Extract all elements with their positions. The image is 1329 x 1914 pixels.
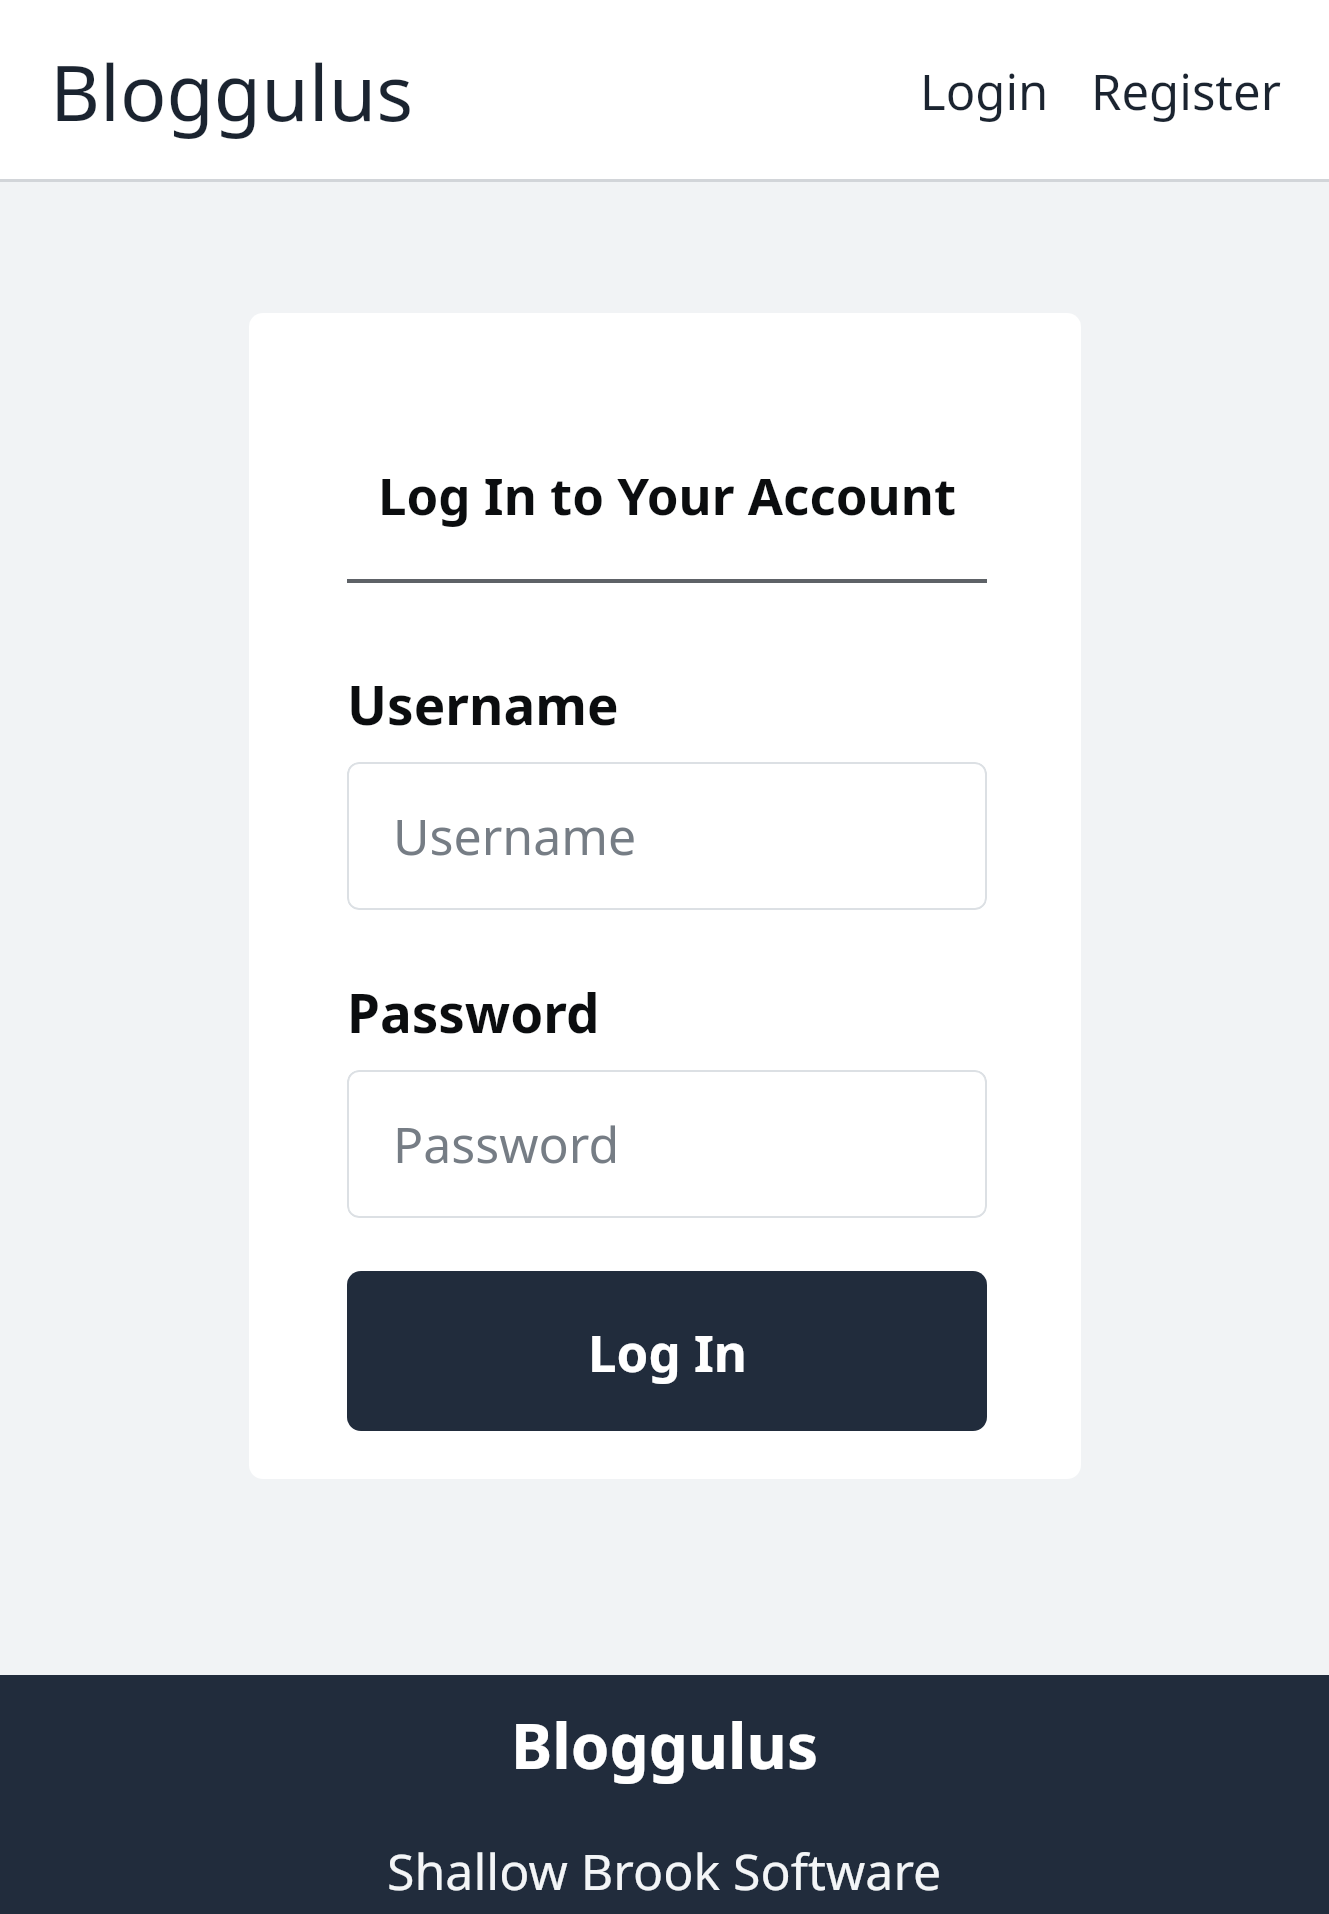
button[interactable]: Login bbox=[912, 44, 1057, 139]
staticText: Username bbox=[393, 802, 637, 870]
staticText: Log In to Your Account bbox=[347, 460, 987, 529]
button[interactable]: Log In bbox=[347, 1271, 987, 1431]
staticText: Password bbox=[393, 1110, 620, 1178]
button[interactable]: Bloggulus bbox=[505, 1697, 825, 1793]
staticText: Log In bbox=[588, 1317, 747, 1386]
button[interactable]: Register bbox=[1083, 44, 1289, 139]
staticText: Password bbox=[347, 976, 600, 1048]
button[interactable]: Bloggulus bbox=[46, 33, 418, 150]
button[interactable]: Username bbox=[347, 762, 987, 910]
button[interactable]: Password bbox=[347, 1070, 987, 1218]
staticText: Username bbox=[347, 668, 619, 740]
button[interactable]: Shallow Brook Software bbox=[381, 1831, 948, 1911]
